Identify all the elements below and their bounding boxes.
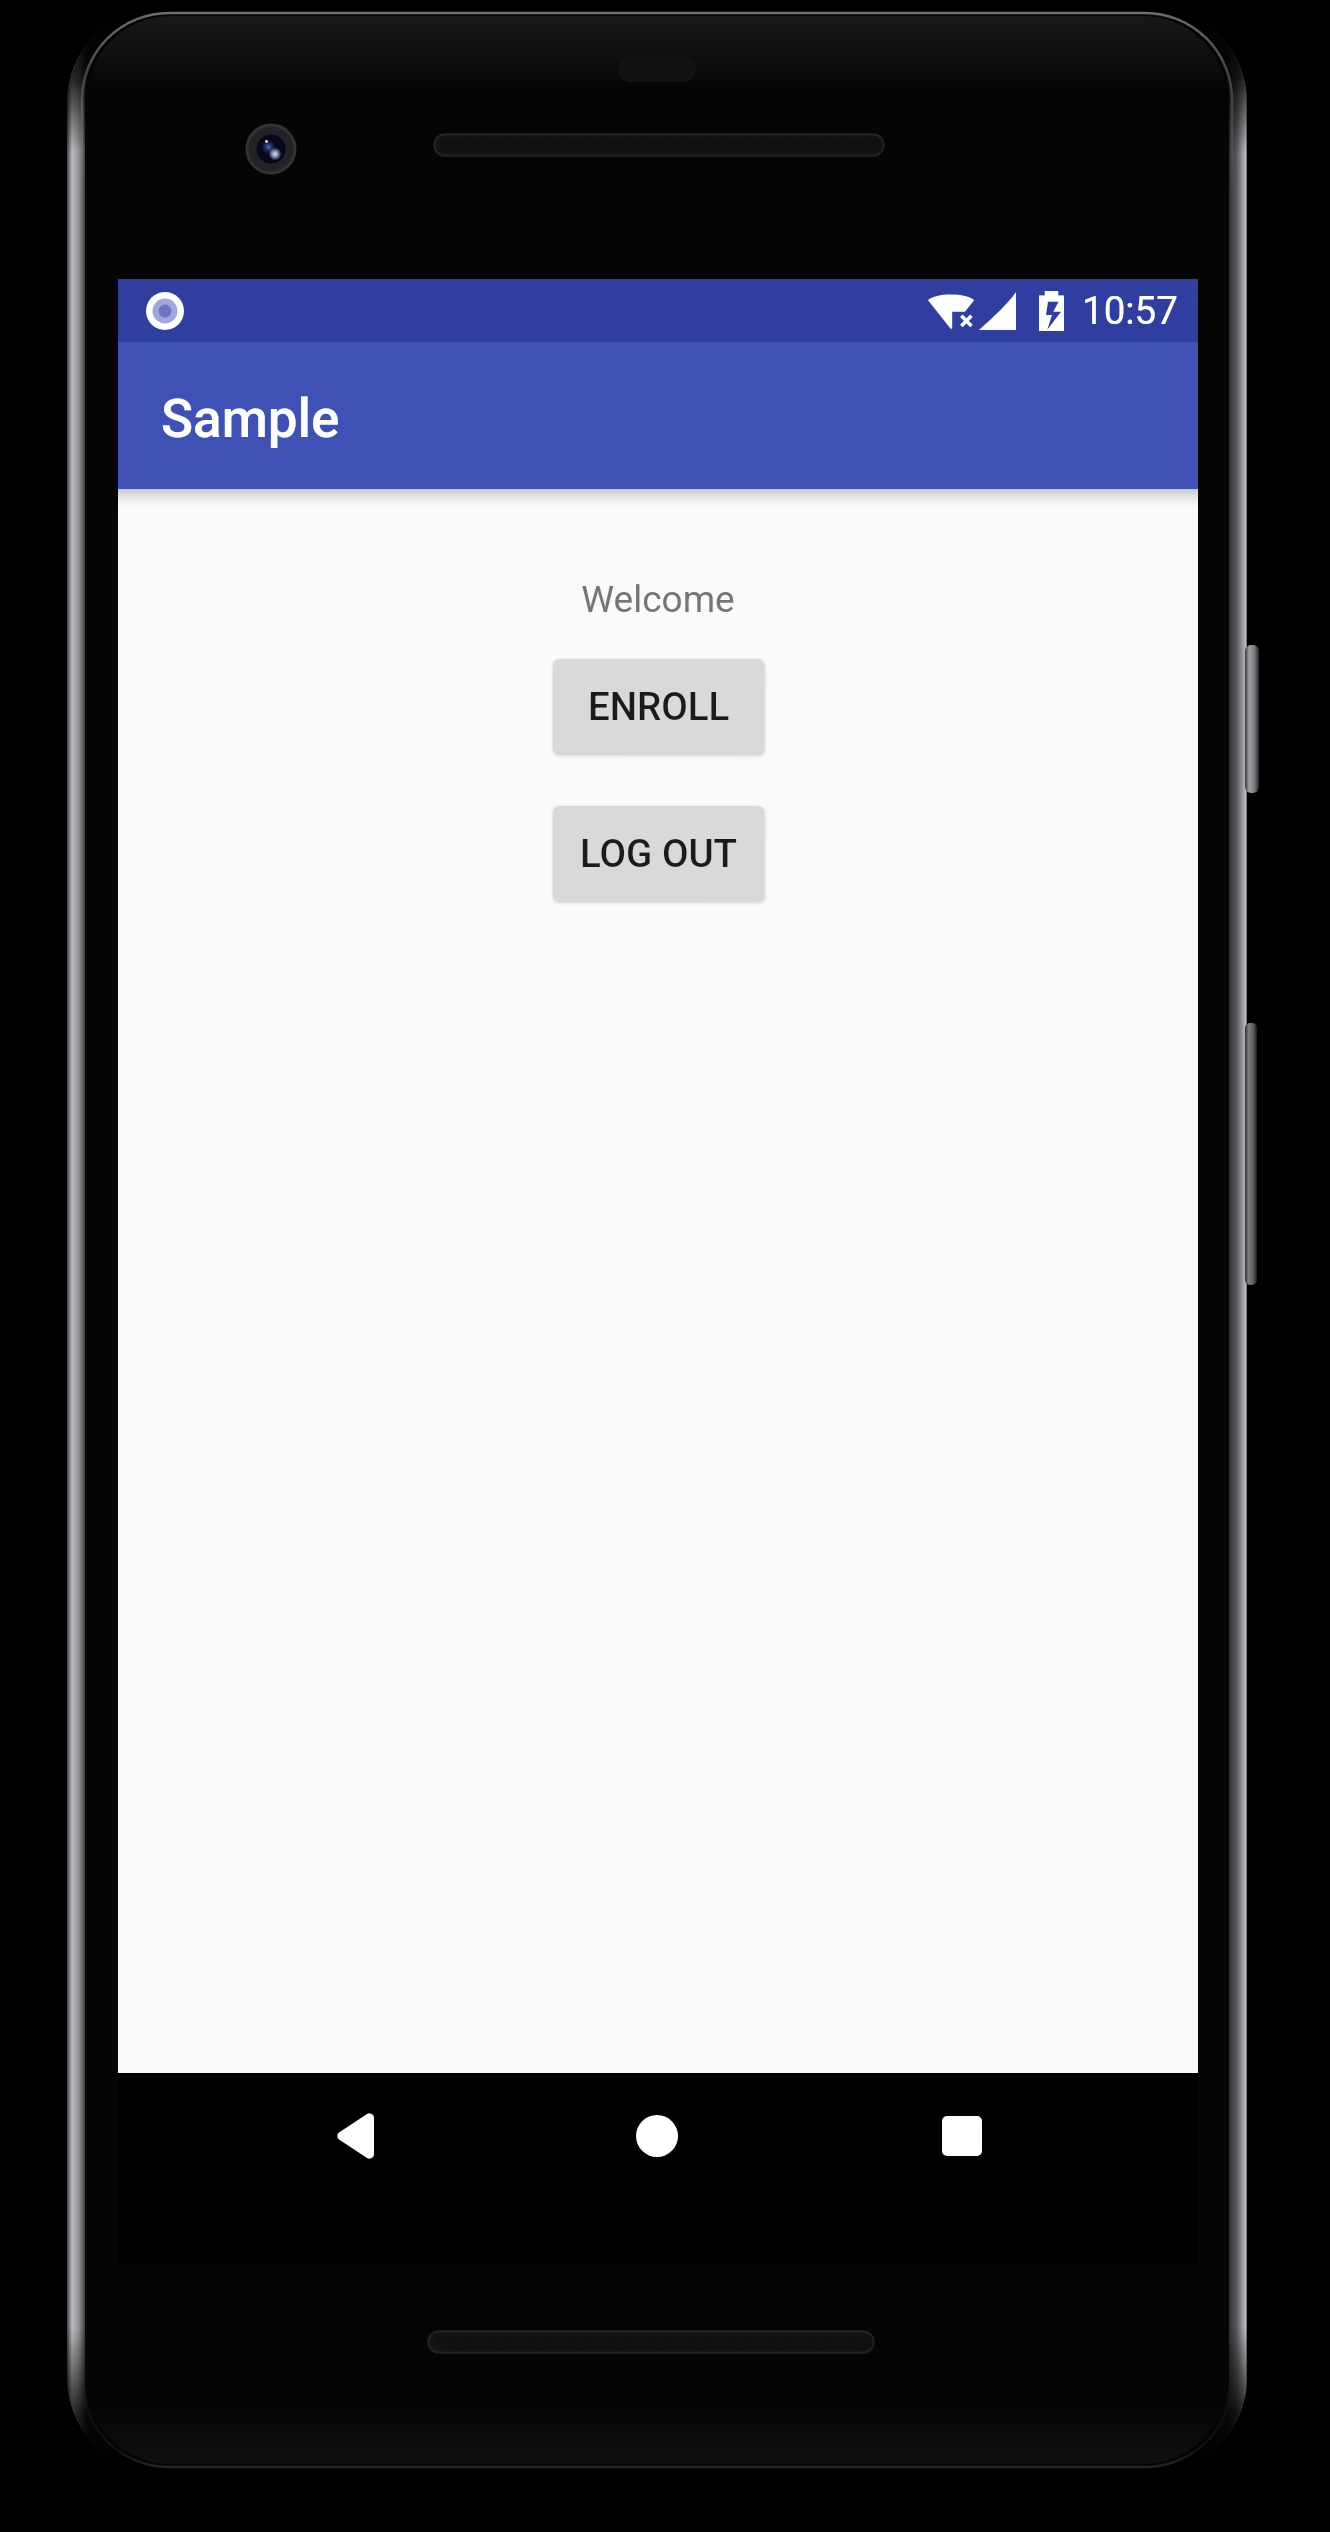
button[interactable]: Back (311, 2092, 399, 2180)
button[interactable]: Recent apps (918, 2092, 1006, 2180)
button[interactable]: LOG OUT (553, 806, 764, 901)
staticText: LOG OUT (580, 831, 738, 876)
staticText: Sample (161, 388, 340, 450)
staticText: Welcome (581, 578, 735, 621)
staticText: 10:57 (1082, 288, 1178, 333)
staticText: ENROLL (588, 684, 730, 729)
button[interactable]: Home (613, 2092, 701, 2180)
button[interactable]: ENROLL (553, 659, 764, 754)
